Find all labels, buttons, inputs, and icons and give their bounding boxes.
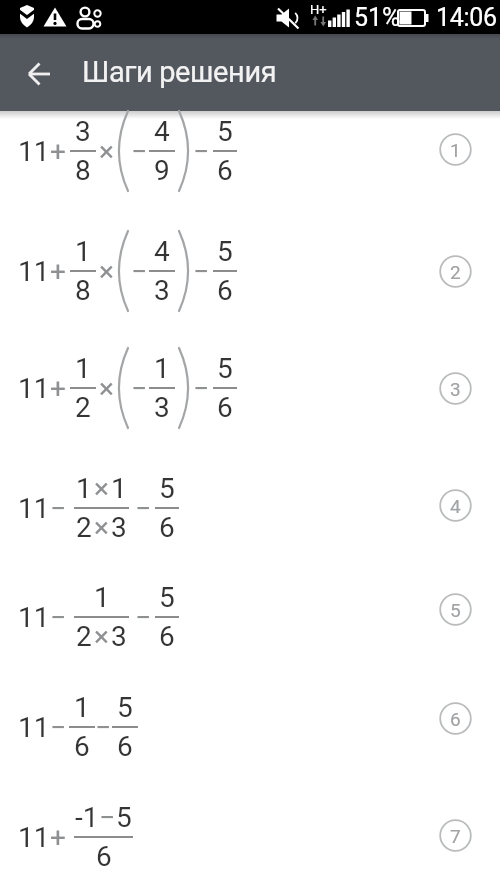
staticText: 2 xyxy=(76,620,92,653)
staticText: 6 xyxy=(117,730,133,763)
staticText: + xyxy=(50,821,66,854)
button[interactable]: 11 xyxy=(0,338,500,438)
staticText: 4 xyxy=(450,495,461,517)
staticText: 6 xyxy=(159,620,175,653)
staticText: 6 xyxy=(217,391,233,424)
staticText: 1 xyxy=(154,352,170,385)
staticText: × xyxy=(99,372,114,405)
staticText: × xyxy=(99,135,114,168)
staticText: 3 xyxy=(111,511,127,544)
button[interactable] xyxy=(16,51,61,96)
staticText: − xyxy=(50,601,67,634)
staticText: 5 xyxy=(159,472,175,505)
staticText: 1 xyxy=(94,581,110,614)
staticText: 6 xyxy=(450,708,461,730)
staticText: − xyxy=(193,372,210,405)
staticText: 6 xyxy=(74,730,90,763)
staticText: 6 xyxy=(96,840,112,873)
button[interactable]: 11 xyxy=(0,458,500,558)
staticText: 5 xyxy=(450,599,461,621)
staticText: 3 xyxy=(111,620,127,653)
staticText: 11 xyxy=(18,821,50,854)
staticText: 3 xyxy=(75,115,91,148)
staticText: − xyxy=(99,801,116,834)
button[interactable]: 11 xyxy=(0,221,500,321)
staticText: H+ xyxy=(310,2,327,17)
staticText: 8 xyxy=(75,274,91,307)
staticText: 2 xyxy=(75,391,91,424)
staticText: 1 xyxy=(74,691,90,724)
staticText: × xyxy=(94,511,109,544)
staticText: 3 xyxy=(154,274,170,307)
staticText: 6 xyxy=(217,154,233,187)
staticText: 5 xyxy=(116,801,132,834)
staticText: + xyxy=(50,372,66,405)
button[interactable]: 11 xyxy=(0,787,500,887)
staticText: − xyxy=(131,255,148,288)
staticText: 6 xyxy=(217,274,233,307)
staticText: 5 xyxy=(217,115,233,148)
staticText: × xyxy=(94,472,109,505)
staticText: 8 xyxy=(75,154,91,187)
staticText: 11 xyxy=(18,492,50,525)
staticText: 5 xyxy=(159,581,175,614)
staticText: 4 xyxy=(154,235,170,268)
staticText: 14:06 xyxy=(436,3,497,32)
button[interactable]: 11 xyxy=(0,101,500,201)
staticText: 11 xyxy=(18,255,50,288)
button[interactable]: 11 xyxy=(0,567,500,667)
button[interactable]: 11 xyxy=(0,677,500,777)
staticText: 3 xyxy=(450,378,461,400)
staticText: − xyxy=(135,601,152,634)
staticText: 5 xyxy=(217,352,233,385)
staticText: 11 xyxy=(18,135,50,168)
staticText: 51% xyxy=(354,3,401,32)
staticText: 2 xyxy=(76,511,92,544)
staticText: − xyxy=(131,135,148,168)
staticText: − xyxy=(193,255,210,288)
staticText: + xyxy=(50,255,66,288)
staticText: 9 xyxy=(154,154,170,187)
staticText: 3 xyxy=(154,391,170,424)
staticText: + xyxy=(50,135,66,168)
staticText: -1 xyxy=(75,801,99,834)
staticText: 11 xyxy=(18,711,50,744)
staticText: 1 xyxy=(75,352,91,385)
staticText: 1 xyxy=(76,472,92,505)
staticText: − xyxy=(95,711,112,744)
staticText: − xyxy=(193,135,210,168)
staticText: Шаги решения xyxy=(82,55,277,89)
staticText: × xyxy=(99,255,114,288)
staticText: − xyxy=(50,492,67,525)
staticText: 4 xyxy=(154,115,170,148)
staticText: − xyxy=(135,492,152,525)
staticText: 5 xyxy=(217,235,233,268)
staticText: 1 xyxy=(450,139,461,161)
staticText: 7 xyxy=(450,825,461,847)
staticText: 1 xyxy=(111,472,127,505)
staticText: 6 xyxy=(159,511,175,544)
staticText: 1 xyxy=(75,235,91,268)
staticText: 5 xyxy=(117,691,133,724)
staticText: − xyxy=(50,711,67,744)
staticText: × xyxy=(94,620,109,653)
staticText: 2 xyxy=(450,261,461,283)
staticText: 11 xyxy=(18,372,50,405)
staticText: 11 xyxy=(18,601,50,634)
staticText: − xyxy=(131,372,148,405)
